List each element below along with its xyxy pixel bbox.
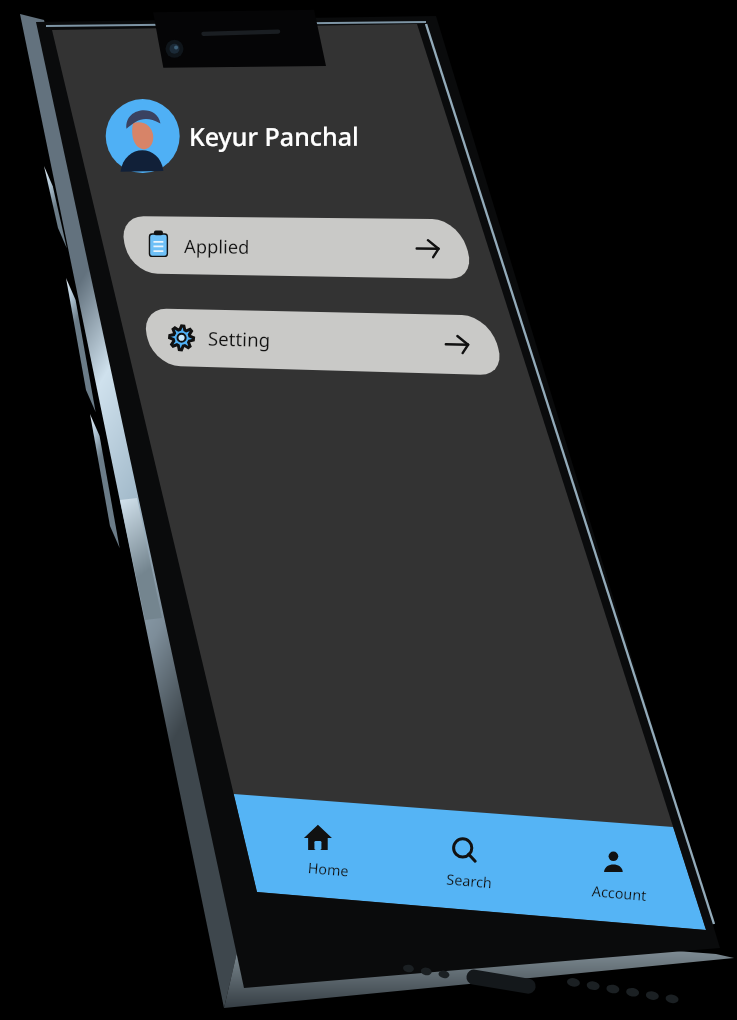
button[interactable]: Profile Keyur Panchal: [88, 55, 398, 150]
button[interactable]: Account: [570, 872, 706, 958]
button[interactable]: Home: [300, 882, 428, 968]
button[interactable]: Setting: [148, 262, 496, 334]
button[interactable]: Applied: [120, 186, 472, 258]
button[interactable]: Search: [432, 884, 560, 970]
